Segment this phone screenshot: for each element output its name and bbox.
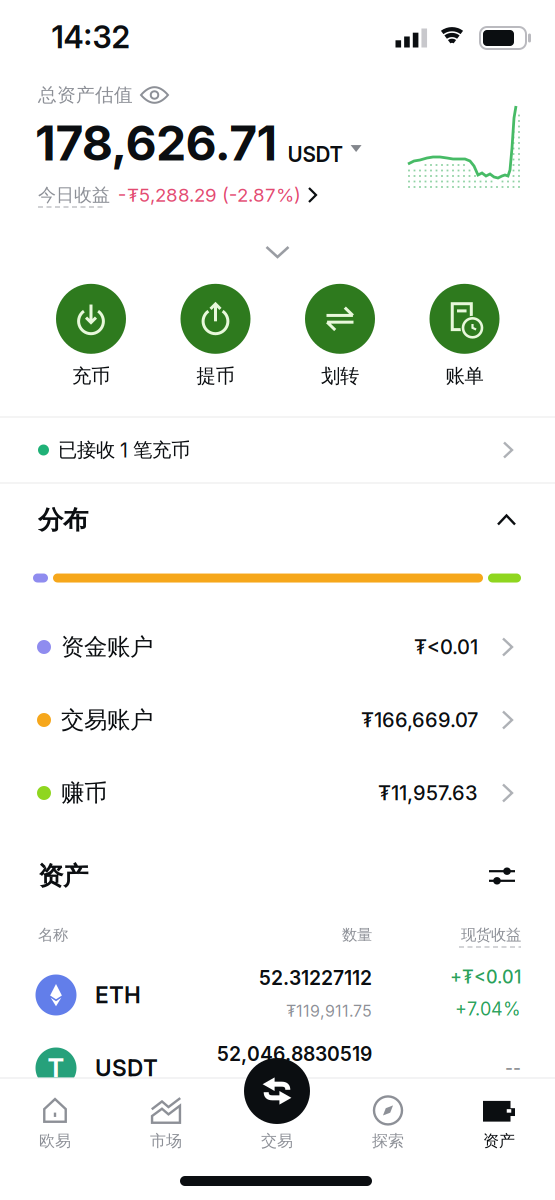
staticText: +7.04% [455, 998, 521, 1020]
button[interactable]: 已接收 1 笔充币 [0, 418, 555, 482]
staticText: 欧易 [39, 1131, 71, 1151]
button[interactable]: T [0, 1021, 555, 1105]
button[interactable]: 交易 [232, 1092, 322, 1156]
staticText: 分布 [38, 504, 88, 536]
staticText: 今日收益 [38, 184, 110, 206]
staticText: 交易账户 [61, 705, 153, 735]
button[interactable]: Trade [244, 1058, 310, 1124]
button[interactable]: 市场 [121, 1092, 211, 1156]
staticText: USDT [288, 142, 344, 167]
button[interactable]: 账单 [429, 284, 499, 388]
button[interactable]: ETH [0, 953, 555, 1037]
staticText: 资产 [38, 860, 88, 892]
staticText: 总资产估值 [38, 83, 133, 107]
button[interactable]: 欧易 [10, 1092, 100, 1156]
staticText: -₮5,288.29 (-2.87%) [118, 184, 301, 206]
button[interactable]: 充币 [56, 284, 126, 388]
staticText: 充币 [72, 364, 110, 388]
button[interactable]: 探索 [343, 1092, 433, 1156]
button[interactable]: 提币 [180, 284, 250, 388]
staticText: 资产 [483, 1131, 515, 1151]
staticText: 探索 [372, 1131, 404, 1151]
button[interactable]: Collapse [254, 235, 300, 269]
staticText: ₮166,669.07 [361, 708, 478, 732]
staticText: +₮<0.01 [450, 966, 521, 988]
staticText: ETH [95, 981, 141, 1009]
staticText: 已接收 1 笔充币 [58, 438, 190, 462]
staticText: 市场 [150, 1131, 182, 1151]
button[interactable]: 178,626.71 [0, 114, 555, 172]
staticText: 178,626.71 [35, 114, 278, 172]
staticText: 14:32 [51, 18, 130, 55]
staticText: -- [505, 1057, 521, 1078]
staticText: 52.31227112 [259, 966, 372, 990]
button[interactable]: 赚币 [0, 757, 555, 829]
button[interactable]: 资金账户 [0, 611, 555, 683]
staticText: USDT [95, 1054, 158, 1082]
staticText: 划转 [321, 364, 359, 388]
staticText: ₮<0.01 [414, 635, 478, 659]
button[interactable]: Filter assets [481, 858, 523, 894]
button[interactable]: 交易账户 [0, 684, 555, 756]
staticText: 现货收益 [461, 925, 521, 945]
staticText: 名称 [38, 925, 68, 945]
staticText: 52,046.8830519 [217, 1042, 372, 1066]
staticText: 赚币 [61, 778, 107, 808]
staticText: ₮11,957.63 [378, 781, 478, 805]
staticText: 账单 [445, 364, 483, 388]
staticText: T [47, 1053, 64, 1083]
staticText: 交易 [261, 1131, 293, 1151]
button[interactable]: Hide balance [0, 83, 555, 107]
staticText: ₮119,911.75 [286, 1001, 372, 1021]
button[interactable]: 分布 [0, 496, 555, 544]
staticText: 资金账户 [61, 632, 153, 662]
staticText: 提币 [196, 364, 234, 388]
staticText: 数量 [342, 925, 372, 945]
button[interactable]: 划转 [305, 284, 375, 388]
button[interactable]: 今日收益 [0, 184, 555, 206]
button[interactable]: 资产 [454, 1092, 544, 1156]
